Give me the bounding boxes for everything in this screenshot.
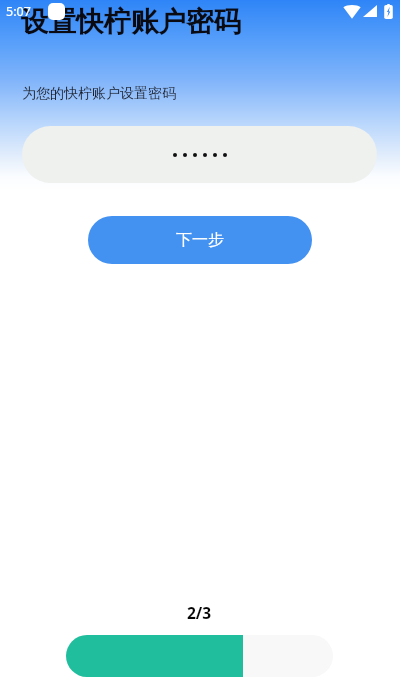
staticText: 下一步 (176, 230, 224, 250)
other: Wi-Fi (343, 4, 361, 19)
button[interactable]: 下一步 (88, 216, 312, 264)
staticText: 设置快柠账户密码 (21, 5, 241, 40)
staticText: 为您的快柠账户设置密码 (22, 85, 176, 103)
other: Signal (363, 5, 377, 17)
staticText: 2/3 (0, 602, 399, 623)
other: Battery charging (383, 4, 394, 19)
button[interactable] (22, 126, 377, 183)
staticText: 5:07 (6, 3, 31, 20)
